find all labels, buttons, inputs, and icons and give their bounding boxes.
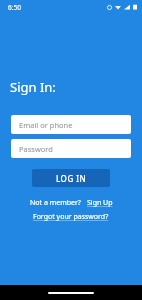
staticText: Not a member?: [30, 198, 81, 208]
staticText: Email or phone: [19, 120, 73, 130]
staticText: Password: [19, 144, 53, 154]
staticText: Forgot your password?: [33, 212, 109, 222]
staticText: Sign In:: [10, 78, 56, 96]
other: Home gesture bar: [48, 292, 94, 294]
button[interactable]: Sign Up: [87, 198, 113, 208]
staticText: Sign Up: [87, 198, 113, 208]
button[interactable]: Email or phone: [11, 115, 131, 134]
button[interactable]: Forgot your password?: [33, 212, 109, 222]
staticText: 6:50: [8, 3, 21, 12]
staticText: LOG IN: [56, 173, 87, 184]
button[interactable]: Password: [11, 139, 131, 158]
button[interactable]: LOG IN: [32, 169, 110, 187]
